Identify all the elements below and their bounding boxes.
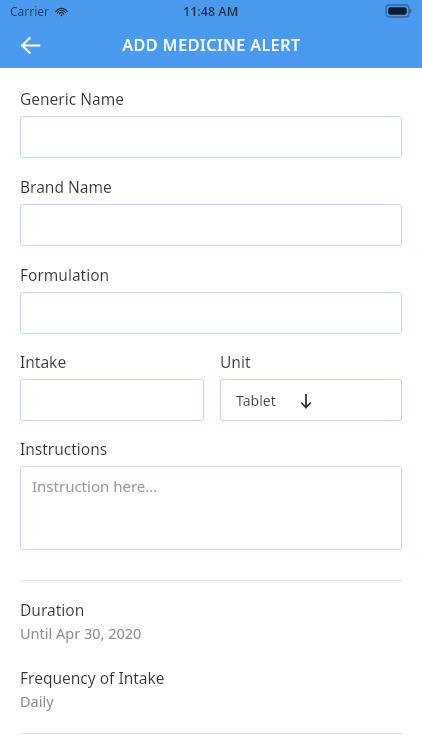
staticText: Duration: [20, 599, 85, 620]
staticText: Frequency of Intake: [20, 667, 165, 688]
button[interactable]: Duration: [20, 599, 402, 643]
button[interactable]: [20, 204, 402, 246]
staticText: Daily: [20, 691, 54, 711]
staticText: Until Apr 30, 2020: [20, 623, 142, 643]
button[interactable]: [20, 116, 402, 158]
staticText: Tablet: [236, 391, 276, 410]
button[interactable]: Back: [8, 23, 52, 67]
staticText: Brand Name: [20, 176, 112, 197]
staticText: Intake: [20, 351, 67, 372]
button[interactable]: Instruction here...: [20, 466, 402, 550]
staticText: ADD MEDICINE ALERT: [122, 34, 301, 56]
staticText: Formulation: [20, 264, 110, 285]
staticText: 11:48 AM: [183, 3, 239, 20]
button[interactable]: [20, 379, 204, 421]
button[interactable]: Frequency of Intake: [20, 667, 402, 711]
staticText: Instructions: [20, 438, 108, 459]
staticText: Unit: [220, 351, 251, 372]
staticText: Carrier: [10, 3, 50, 19]
button[interactable]: [20, 292, 402, 334]
button[interactable]: Tablet: [220, 379, 402, 421]
staticText: Instruction here...: [32, 476, 158, 496]
staticText: Generic Name: [20, 88, 124, 109]
